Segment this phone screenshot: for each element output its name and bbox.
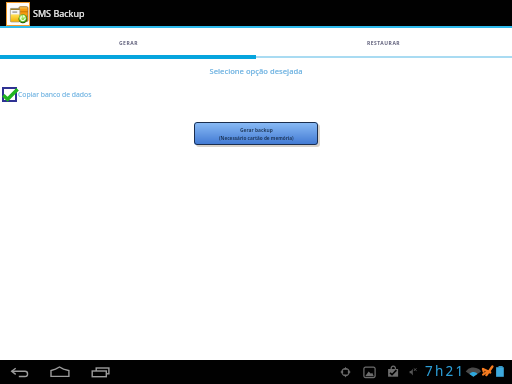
- button[interactable]: Copiar banco de dados: [2, 87, 92, 102]
- staticText: Gerar backup: [240, 127, 273, 134]
- button[interactable]: RESTAURAR: [256, 33, 512, 53]
- staticText: Selecione opção desejada: [0, 66, 512, 76]
- staticText: (Necessário cartão de memória): [219, 135, 294, 141]
- button[interactable]: Recent apps: [86, 360, 118, 384]
- staticText: RESTAURAR: [367, 40, 401, 47]
- button[interactable]: Gerar backup: [194, 122, 318, 145]
- staticText: SMS Backup: [33, 7, 85, 19]
- staticText: GERAR: [119, 40, 138, 47]
- button[interactable]: GERAR: [0, 33, 256, 53]
- staticText: 7h21: [425, 362, 466, 380]
- staticText: Copiar banco de dados: [18, 90, 92, 99]
- button[interactable]: Back: [4, 360, 36, 384]
- button[interactable]: Home: [44, 360, 76, 384]
